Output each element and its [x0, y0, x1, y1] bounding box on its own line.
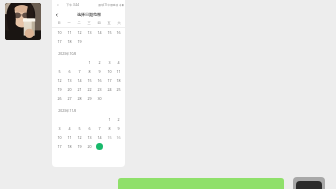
staticText: 5 — [58, 69, 61, 74]
button[interactable]: 21 — [74, 85, 84, 94]
button[interactable] — [94, 142, 104, 151]
button[interactable]: 23 — [94, 85, 104, 94]
button[interactable]: 15 — [84, 76, 94, 85]
button[interactable]: 8 — [104, 124, 114, 133]
button[interactable]: 选择日期范围 — [77, 12, 101, 17]
button[interactable]: 28 — [74, 94, 84, 103]
staticText: 二 — [77, 21, 81, 25]
button[interactable]: 3 — [54, 124, 64, 133]
button[interactable]: 30 — [94, 94, 104, 103]
button[interactable]: 17 — [54, 37, 64, 46]
button[interactable]: 9 — [94, 67, 104, 76]
staticText: 16 — [97, 78, 102, 83]
staticText: 13 — [67, 78, 72, 83]
button[interactable]: 19 — [54, 85, 64, 94]
staticText: 26 — [57, 96, 62, 101]
button[interactable]: 15 — [104, 133, 114, 142]
button[interactable]: 27 — [64, 94, 74, 103]
button[interactable]: 1 — [84, 58, 94, 67]
button[interactable]: 10 — [54, 28, 64, 37]
button[interactable]: 16 — [94, 76, 104, 85]
staticText: 27 — [67, 96, 72, 101]
button[interactable]: 2 — [114, 115, 123, 124]
button[interactable]: 14 — [74, 76, 84, 85]
button[interactable]: 5 — [74, 124, 84, 133]
staticText: 六 — [117, 21, 121, 25]
button[interactable]: 11 — [114, 67, 123, 76]
button[interactable]: 3 — [104, 58, 114, 67]
staticText: 16 — [116, 30, 121, 35]
button[interactable]: 20 — [84, 142, 94, 151]
button[interactable]: 19 — [74, 37, 84, 46]
button[interactable]: 12 — [54, 76, 64, 85]
staticText: 7 — [78, 69, 81, 74]
button[interactable]: 14 — [94, 28, 104, 37]
button[interactable]: 2 — [94, 58, 104, 67]
button[interactable]: 8 — [84, 67, 94, 76]
button[interactable]: 6 — [64, 67, 74, 76]
button[interactable]: 12 — [74, 133, 84, 142]
staticText: 7 — [98, 126, 101, 131]
button[interactable]: 4 — [114, 58, 123, 67]
button[interactable]: Video call preview — [5, 3, 41, 40]
button[interactable]: 7 — [94, 124, 104, 133]
button[interactable]: More — [293, 177, 325, 189]
button[interactable]: 7 — [74, 67, 84, 76]
button[interactable]: 15 — [104, 28, 114, 37]
staticText: 6 — [68, 69, 71, 74]
button[interactable]: 22 — [84, 85, 94, 94]
staticText: 18 — [67, 39, 72, 44]
button[interactable]: 13 — [84, 133, 94, 142]
button[interactable]: 25 — [114, 85, 123, 94]
staticText: 24 — [107, 87, 112, 92]
button[interactable]: Confirm — [118, 178, 284, 189]
button[interactable]: 13 — [64, 76, 74, 85]
staticText: 11 — [67, 135, 72, 140]
button[interactable]: 10 — [104, 67, 114, 76]
button[interactable]: 12 — [74, 28, 84, 37]
staticText: 21 — [77, 87, 82, 92]
staticText: 22 — [87, 87, 92, 92]
button[interactable]: 17 — [104, 76, 114, 85]
button[interactable]: 11 — [64, 28, 74, 37]
button[interactable]: 17 — [54, 142, 64, 151]
button[interactable]: 20 — [64, 85, 74, 94]
button[interactable]: 13 — [84, 28, 94, 37]
staticText: 15 — [107, 30, 112, 35]
button[interactable]: 9 — [114, 124, 123, 133]
button[interactable]: 16 — [114, 28, 123, 37]
button[interactable]: 19 — [74, 142, 84, 151]
button[interactable]: Back — [55, 2, 61, 8]
button[interactable]: 24 — [104, 85, 114, 94]
button[interactable]: 10 — [54, 133, 64, 142]
button[interactable]: 26 — [54, 94, 64, 103]
button[interactable]: Back — [53, 11, 60, 18]
button[interactable]: 11 — [64, 133, 74, 142]
button[interactable]: 1 — [104, 115, 114, 124]
button[interactable]: 18 — [64, 142, 74, 151]
button[interactable]: 16 — [114, 133, 123, 142]
button[interactable]: 18 — [114, 76, 123, 85]
button[interactable]: 14 — [94, 133, 104, 142]
button[interactable]: 5 — [54, 67, 64, 76]
button[interactable]: 6 — [84, 124, 94, 133]
button[interactable]: 18 — [64, 37, 74, 46]
button[interactable]: 4 — [64, 124, 74, 133]
button[interactable]: 29 — [84, 94, 94, 103]
